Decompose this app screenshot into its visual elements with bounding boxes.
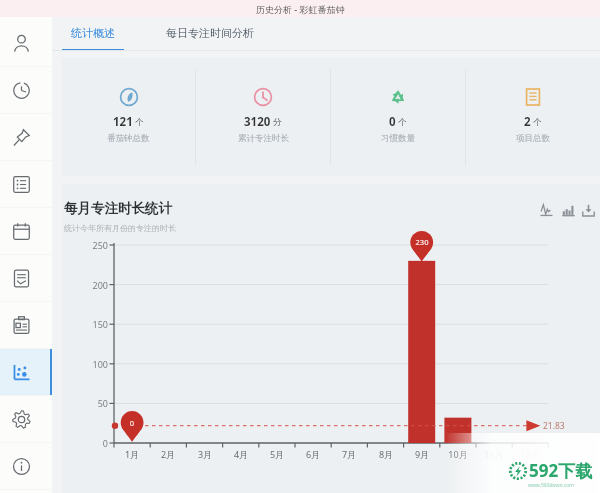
staticText: 21.83: [543, 420, 565, 432]
button[interactable]: 统计概述: [62, 17, 124, 51]
staticText: 统计概述: [71, 26, 115, 40]
staticText: 习惯数量: [381, 133, 415, 144]
button[interactable]: Line chart: [539, 203, 554, 218]
staticText: 每月专注时长统计: [64, 200, 172, 217]
button[interactable]: Statistics: [0, 349, 52, 396]
staticText: 592下载: [529, 459, 593, 482]
staticText: 2: [524, 114, 531, 130]
staticText: 3120: [244, 114, 271, 130]
staticText: 7月: [329, 448, 369, 460]
staticText: 1月: [112, 448, 152, 460]
button[interactable]: Profile: [0, 20, 52, 67]
staticText: 个: [533, 117, 542, 128]
button[interactable]: Pinned: [0, 114, 52, 161]
button[interactable]: 0: [331, 58, 465, 176]
staticText: 200: [68, 279, 108, 291]
staticText: 累计专注时长: [238, 133, 289, 144]
staticText: 番茄钟总数: [107, 133, 150, 144]
button[interactable]: 3120: [196, 58, 330, 176]
staticText: 100: [68, 358, 108, 370]
button[interactable]: Notes: [0, 255, 52, 302]
staticText: 6月: [293, 448, 333, 460]
button[interactable]: Calendar: [0, 208, 52, 255]
button[interactable]: Projects: [0, 302, 52, 349]
staticText: 个: [398, 117, 407, 128]
staticText: 统计今年所有月份的专注的时长: [64, 223, 176, 233]
staticText: 5月: [257, 448, 297, 460]
button[interactable]: History: [0, 67, 52, 114]
staticText: 150: [68, 318, 108, 330]
staticText: 121: [113, 114, 133, 130]
staticText: 9月: [402, 448, 442, 460]
staticText: 2月: [148, 448, 188, 460]
button[interactable]: 2: [466, 58, 600, 176]
staticText: 10月: [438, 448, 478, 460]
staticText: 50: [68, 397, 108, 409]
staticText: 3月: [185, 448, 225, 460]
staticText: 4月: [221, 448, 261, 460]
staticText: 8月: [366, 448, 406, 460]
button[interactable]: 121: [62, 58, 195, 176]
staticText: 历史分析 - 彩虹番茄钟: [256, 3, 345, 15]
button[interactable]: About: [0, 443, 52, 490]
staticText: 项目总数: [516, 133, 550, 144]
staticText: 250: [68, 239, 108, 251]
staticText: www.592down.com: [528, 482, 574, 489]
staticText: 230: [402, 237, 442, 247]
staticText: 分: [273, 117, 282, 128]
staticText: 个: [135, 117, 144, 128]
staticText: 0: [68, 437, 108, 449]
button[interactable]: Bar chart: [561, 203, 576, 218]
button[interactable]: Tasks: [0, 161, 52, 208]
staticText: 0: [112, 418, 152, 428]
staticText: 0: [389, 114, 396, 130]
button[interactable]: Settings: [0, 396, 52, 443]
staticText: 每日专注时间分析: [166, 26, 254, 40]
button[interactable]: 每日专注时间分析: [157, 17, 263, 51]
button[interactable]: Download: [581, 203, 596, 218]
